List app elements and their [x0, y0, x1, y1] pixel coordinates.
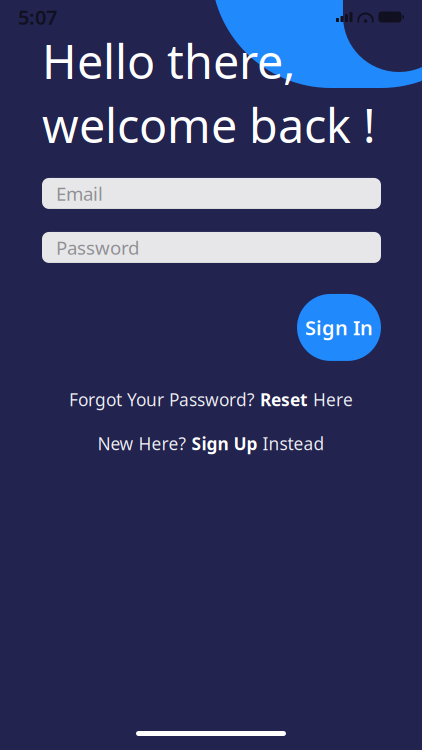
staticText: Sign In: [305, 314, 373, 341]
staticText: Instead: [257, 432, 324, 455]
button[interactable]: Sign In: [297, 294, 381, 361]
button[interactable]: Forgot Your Password?: [69, 384, 353, 415]
button[interactable]: Email: [42, 178, 381, 209]
staticText: Email: [56, 181, 103, 206]
staticText: Reset: [260, 388, 308, 411]
staticText: Here: [308, 388, 353, 411]
button[interactable]: New Here?: [97, 428, 324, 459]
staticText: Password: [56, 235, 139, 260]
button[interactable]: Password: [42, 232, 381, 263]
staticText: Sign Up: [191, 432, 257, 455]
staticText: 5:07: [18, 4, 57, 30]
staticText: Hello there,: [42, 30, 296, 92]
staticText: Forgot Your Password?: [69, 388, 260, 411]
staticText: New Here?: [97, 432, 191, 455]
staticText: welcome back !: [42, 94, 376, 156]
